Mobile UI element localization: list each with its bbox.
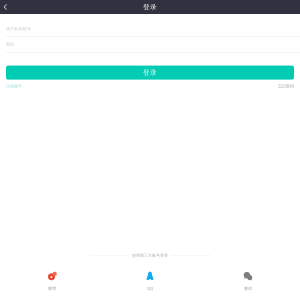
button[interactable]: 注册账号	[6, 84, 22, 88]
staticText: 微博	[48, 286, 56, 291]
button[interactable]: 忘记密码	[278, 84, 294, 88]
staticText: 微信	[244, 286, 252, 291]
button[interactable]: 微信	[199, 271, 297, 291]
staticText: 登录	[143, 3, 157, 11]
button[interactable]: 微博	[3, 271, 101, 291]
button[interactable]: Back	[0, 0, 14, 14]
staticText: 注册账号	[6, 84, 22, 88]
staticText: 密码	[6, 42, 14, 47]
staticText: QQ	[147, 286, 153, 291]
button[interactable]: 登录	[6, 66, 294, 80]
staticText: 登录	[143, 68, 157, 77]
staticText: 忘记密码	[278, 84, 294, 88]
button[interactable]: QQ	[101, 271, 199, 291]
staticText: 用户名/手机号	[6, 26, 31, 31]
staticText: 使用第三方账号登录	[132, 253, 168, 258]
